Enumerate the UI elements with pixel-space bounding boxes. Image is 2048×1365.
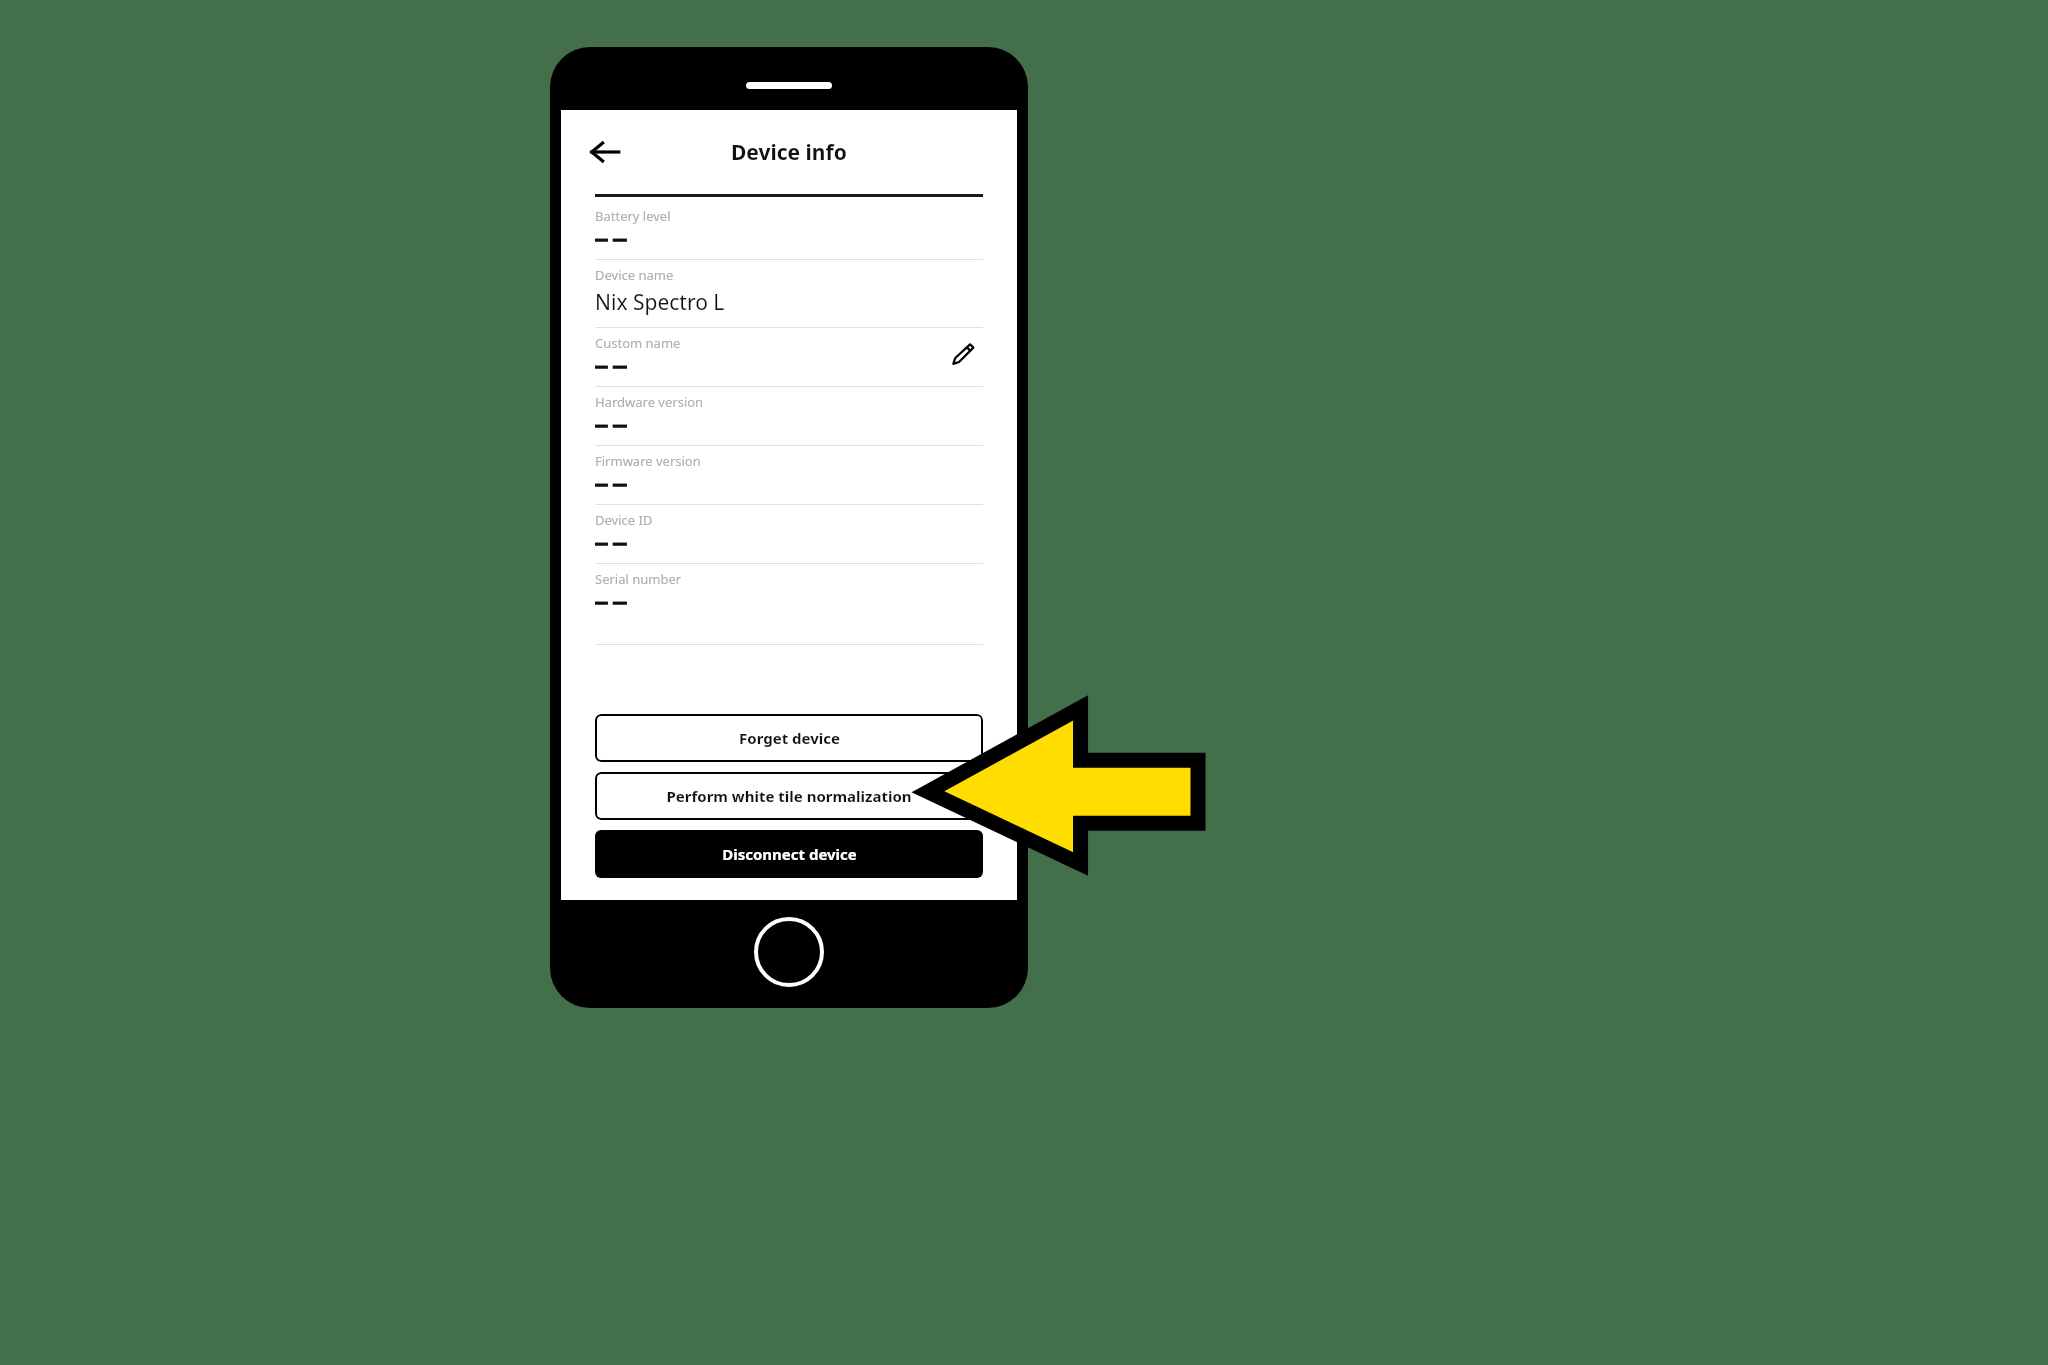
staticText: Hardware version	[595, 393, 704, 411]
staticText: Device name	[595, 266, 674, 284]
staticText: Firmware version	[595, 452, 701, 470]
button[interactable]: Forget device	[595, 714, 983, 762]
staticText: Nix Spectro L	[595, 288, 725, 317]
staticText: Custom name	[595, 334, 681, 352]
button[interactable]: Perform white tile normalization	[595, 772, 983, 820]
other: Home	[754, 917, 824, 987]
button[interactable]: Back	[579, 126, 631, 178]
staticText: Device ID	[595, 511, 653, 529]
button[interactable]: Disconnect device	[595, 830, 983, 878]
staticText: Device info	[731, 138, 847, 167]
staticText: Serial number	[595, 570, 682, 588]
staticText: Perform white tile normalization	[666, 786, 912, 806]
staticText: Disconnect device	[722, 844, 857, 864]
staticText: Forget device	[739, 728, 840, 748]
staticText: Battery level	[595, 207, 671, 225]
button[interactable]: Edit custom name	[943, 334, 983, 374]
